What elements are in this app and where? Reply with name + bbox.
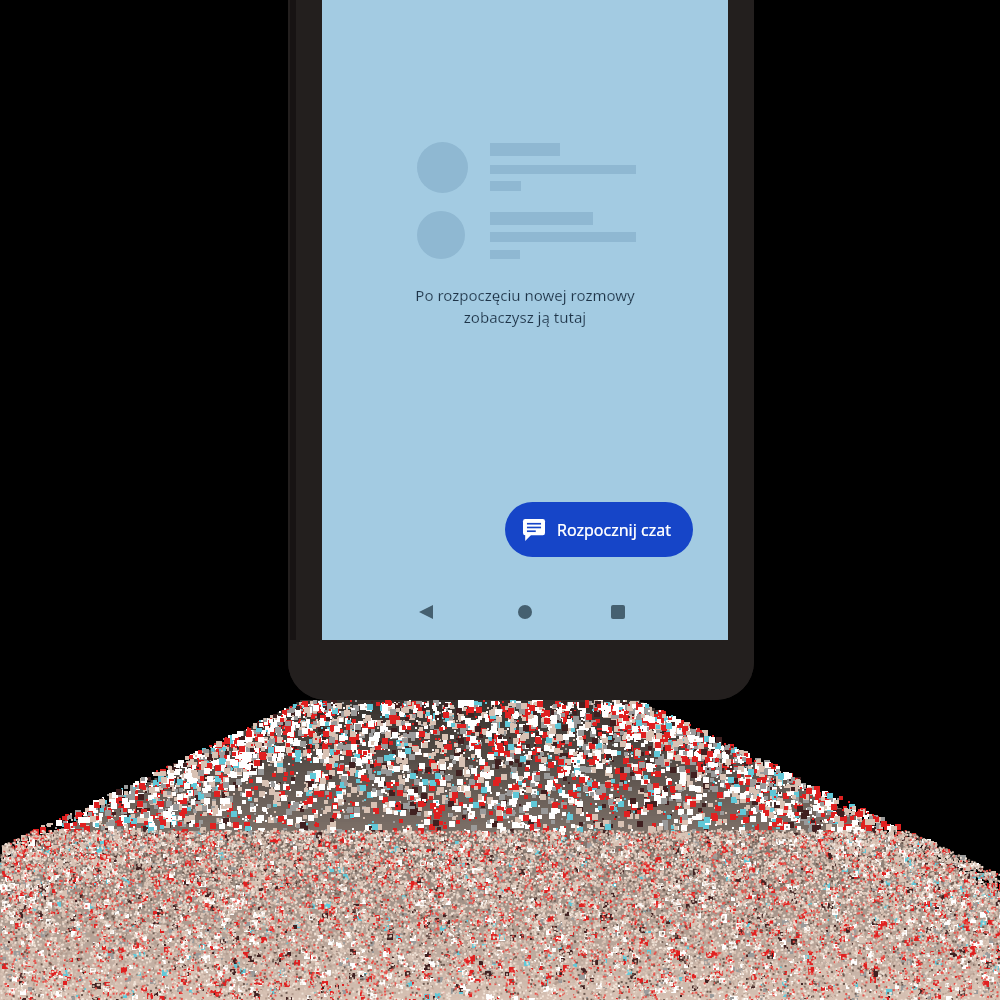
staticText: Rozpocznij czat <box>557 519 671 541</box>
staticText: Po rozpoczęciu nowej rozmowy zobaczysz j… <box>415 285 635 328</box>
button[interactable]: Home <box>511 598 539 626</box>
button[interactable]: Back <box>412 598 440 626</box>
button[interactable]: Recent apps <box>604 598 632 626</box>
button[interactable]: Rozpocznij czat <box>505 502 693 557</box>
